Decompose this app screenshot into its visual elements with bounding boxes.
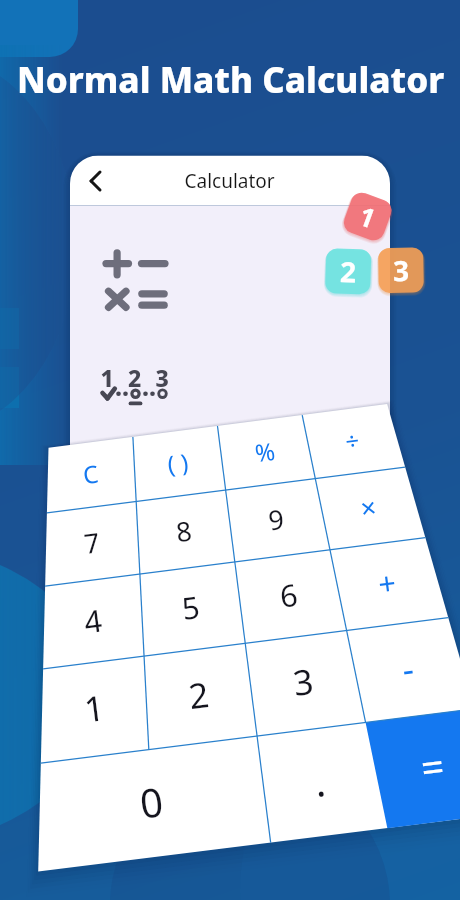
button[interactable] xyxy=(0,0,460,900)
